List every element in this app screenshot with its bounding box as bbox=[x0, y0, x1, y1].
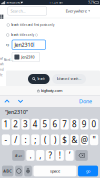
button[interactable]: Previous field bbox=[0, 95, 14, 107]
staticText: ’ bbox=[69, 150, 70, 161]
staticText: wh bbox=[0, 62, 4, 66]
staticText: Jen2310 bbox=[21, 54, 34, 60]
staticText: / bbox=[14, 134, 17, 145]
button[interactable]: Search bbox=[28, 74, 50, 84]
staticText: ABC bbox=[3, 168, 12, 174]
button[interactable]: 3 bbox=[21, 119, 30, 130]
staticText: ; bbox=[34, 134, 36, 145]
button[interactable]: go bbox=[78, 166, 98, 176]
button[interactable]: , bbox=[36, 150, 44, 161]
button[interactable]: @ bbox=[80, 134, 88, 145]
button[interactable]: 6 bbox=[51, 119, 59, 130]
button[interactable]: " bbox=[90, 134, 98, 145]
button[interactable]: $ bbox=[61, 134, 69, 145]
button[interactable]: Advanced search... bbox=[52, 74, 86, 84]
button[interactable]: Everywhere bbox=[66, 7, 90, 15]
staticText: bigfooty.com bbox=[41, 88, 63, 93]
button[interactable]: - bbox=[2, 134, 10, 145]
button[interactable]: Delete bbox=[75, 150, 88, 161]
staticText: 4 bbox=[33, 119, 38, 129]
staticText: wf bbox=[0, 57, 3, 61]
button[interactable]: 9 bbox=[80, 119, 88, 130]
staticText: space bbox=[50, 168, 60, 174]
staticText: By: bbox=[5, 43, 9, 46]
button[interactable]: #+= bbox=[12, 150, 25, 161]
staticText: 11:24 am bbox=[49, 1, 62, 4]
button[interactable]: . bbox=[26, 150, 34, 161]
staticText: 2 bbox=[13, 119, 18, 129]
button[interactable]: ) bbox=[51, 134, 59, 145]
button[interactable]: ABC bbox=[2, 166, 13, 176]
button[interactable]: Switch keyboard bbox=[15, 166, 23, 176]
staticText: TANGERINE bbox=[6, 1, 20, 4]
button[interactable]: ; bbox=[31, 134, 39, 145]
button[interactable]: space bbox=[33, 166, 76, 176]
button[interactable]: Jen2310 bbox=[12, 52, 40, 62]
staticText: Advanced search... bbox=[57, 77, 82, 81]
button[interactable]: bigfooty.com bbox=[0, 86, 100, 95]
staticText: 1 bbox=[3, 119, 8, 129]
staticText: 6 bbox=[52, 119, 57, 129]
button[interactable]: Search titles and first posts only bbox=[7, 22, 54, 28]
staticText: Search titles and first posts only bbox=[11, 23, 54, 27]
button[interactable]: 2 bbox=[12, 119, 20, 130]
button[interactable]: 8 bbox=[70, 119, 79, 130]
button[interactable]: / bbox=[12, 134, 20, 145]
staticText: #+= bbox=[15, 153, 22, 158]
staticText: 92% bbox=[88, 1, 94, 4]
button[interactable]: Search titles only bbox=[6, 32, 37, 38]
button[interactable]: ( bbox=[41, 134, 49, 145]
staticText: Everywhere bbox=[66, 8, 87, 14]
button[interactable]: 5 bbox=[41, 119, 49, 130]
staticText: 9 bbox=[82, 119, 87, 129]
button[interactable]: 1 bbox=[2, 119, 10, 130]
staticText: , bbox=[39, 150, 41, 161]
staticText: 8 bbox=[72, 119, 77, 129]
staticText: ( bbox=[44, 134, 46, 145]
staticText: Jen2310 bbox=[14, 41, 33, 48]
staticText: 3 bbox=[23, 119, 28, 129]
staticText: fe bbox=[0, 73, 3, 77]
staticText: : bbox=[24, 134, 26, 145]
staticText: @ bbox=[81, 134, 88, 145]
button[interactable]: ? bbox=[46, 150, 54, 161]
staticText: - bbox=[4, 134, 7, 145]
staticText: ? bbox=[48, 150, 51, 161]
staticText: nd bbox=[0, 68, 4, 71]
button[interactable]: ’ bbox=[65, 150, 74, 161]
staticText: Word... bbox=[3, 58, 13, 62]
staticText: go bbox=[86, 168, 90, 174]
button[interactable]: Next field bbox=[14, 95, 27, 107]
staticText: Done bbox=[79, 98, 92, 105]
staticText: “Jen2310” bbox=[5, 108, 28, 116]
button[interactable]: & bbox=[70, 134, 79, 145]
staticText: Search titles only bbox=[11, 33, 34, 37]
button[interactable]: “Jen2310” bbox=[5, 107, 28, 117]
button[interactable]: 7 bbox=[61, 119, 69, 130]
button[interactable]: 4 bbox=[31, 119, 39, 130]
staticText: . bbox=[29, 150, 31, 161]
button[interactable]: Done bbox=[79, 95, 100, 107]
button[interactable]: 0 bbox=[90, 119, 98, 130]
staticText: ! bbox=[59, 150, 61, 161]
staticText: Search... bbox=[10, 8, 25, 14]
button[interactable]: Dictation bbox=[24, 166, 32, 176]
staticText: & bbox=[71, 134, 77, 145]
staticText: Search bbox=[37, 77, 45, 81]
staticText: 5 bbox=[43, 119, 48, 129]
staticText: $ bbox=[62, 134, 67, 145]
button[interactable]: ! bbox=[56, 150, 64, 161]
staticText: ) bbox=[54, 134, 56, 145]
button[interactable]: Search... bbox=[8, 7, 47, 15]
staticText: 7 bbox=[62, 119, 67, 129]
button[interactable]: : bbox=[21, 134, 30, 145]
staticText: " bbox=[93, 134, 96, 145]
staticText: 0 bbox=[92, 119, 97, 129]
